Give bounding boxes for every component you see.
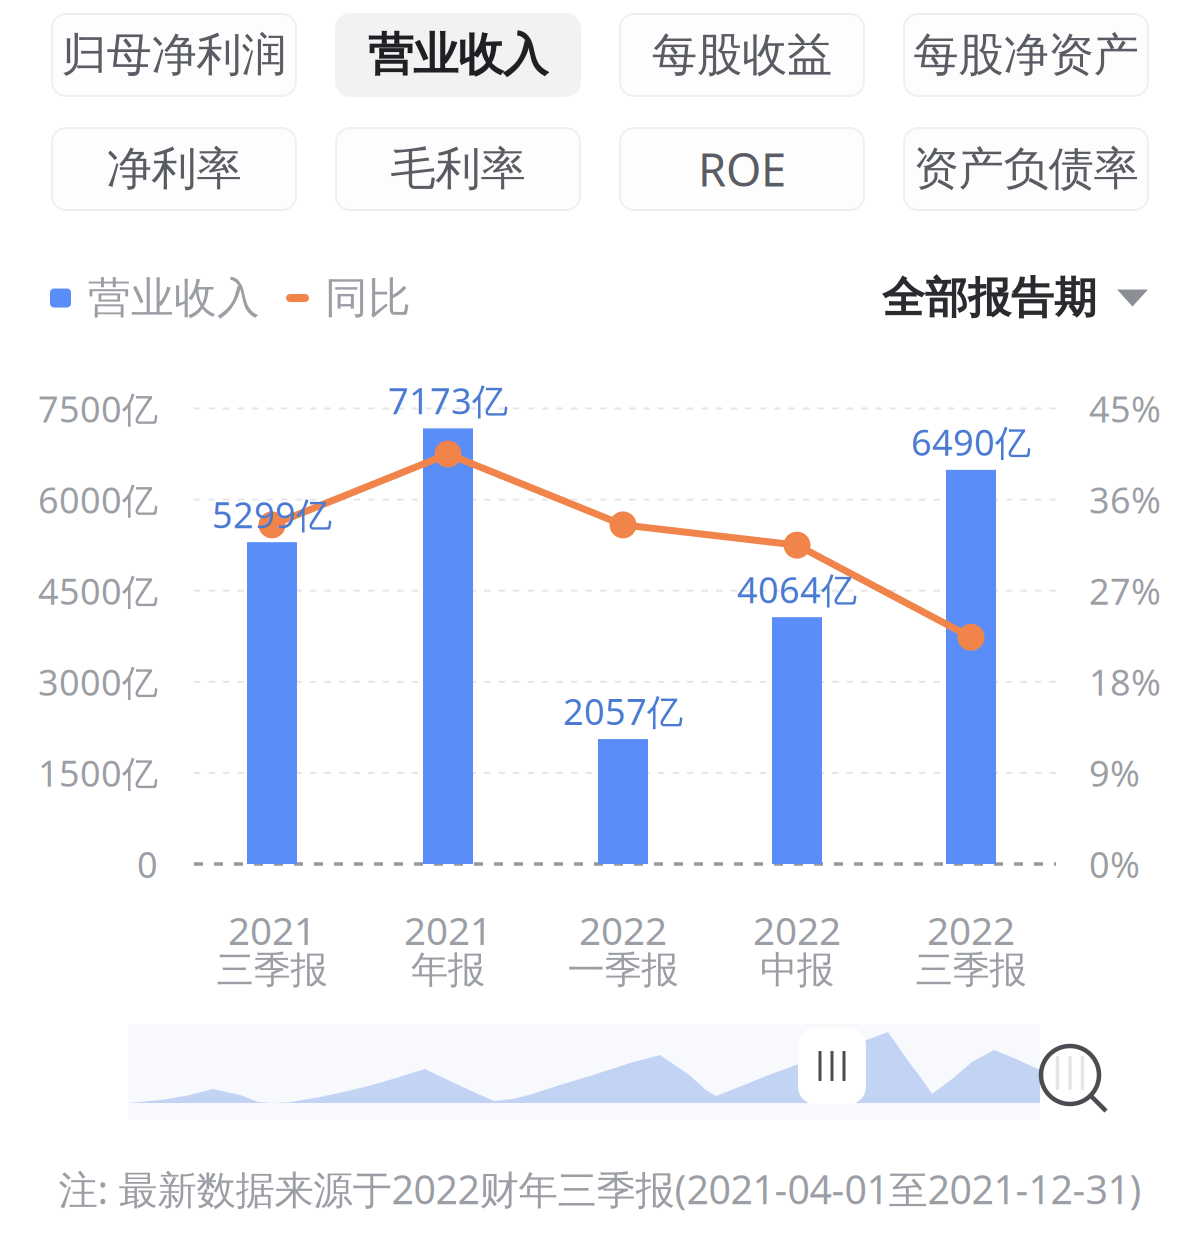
- staticText: 年报: [411, 947, 485, 993]
- staticText: 2022: [927, 904, 1015, 956]
- staticText: 2057亿: [563, 687, 683, 735]
- button[interactable]: 归母净利润: [52, 14, 296, 96]
- staticText: 营业收入: [88, 272, 260, 324]
- staticText: 2022: [753, 904, 841, 956]
- button[interactable]: Adjust range: [798, 1027, 866, 1104]
- button[interactable]: 营业收入: [336, 14, 580, 96]
- staticText: 9%: [1089, 749, 1140, 797]
- staticText: 2021: [404, 904, 492, 956]
- staticText: 0: [137, 840, 158, 888]
- staticText: ROE: [698, 139, 786, 199]
- staticText: 18%: [1089, 658, 1161, 706]
- staticText: 一季报: [567, 947, 678, 993]
- button[interactable]: ROE: [620, 128, 864, 210]
- staticText: 27%: [1089, 567, 1161, 615]
- staticText: 1500亿: [38, 749, 158, 797]
- staticText: 每股净资产: [913, 27, 1138, 83]
- staticText: 同比: [325, 272, 411, 324]
- staticText: 2022: [579, 904, 667, 956]
- button[interactable]: 净利率: [52, 128, 296, 210]
- staticText: 6000亿: [38, 476, 158, 523]
- staticText: 2021: [228, 904, 316, 956]
- staticText: 三季报: [915, 947, 1026, 993]
- staticText: 45%: [1089, 385, 1161, 432]
- staticText: 7500亿: [38, 385, 158, 432]
- staticText: 0%: [1089, 840, 1140, 888]
- staticText: 36%: [1089, 476, 1161, 523]
- button[interactable]: 每股净资产: [904, 14, 1148, 96]
- staticText: 5299亿: [212, 490, 332, 538]
- staticText: 中报: [760, 947, 834, 993]
- staticText: 净利率: [106, 141, 241, 197]
- staticText: 3000亿: [38, 658, 158, 706]
- button[interactable]: 全部报告期: [882, 272, 1148, 324]
- button[interactable]: Zoom: [1025, 1026, 1115, 1120]
- staticText: 7173亿: [388, 376, 508, 424]
- button[interactable]: 资产负债率: [904, 128, 1148, 210]
- button[interactable]: 每股收益: [620, 14, 864, 96]
- staticText: 6490亿: [911, 418, 1031, 466]
- staticText: 全部报告期: [882, 272, 1097, 324]
- staticText: 每股收益: [652, 27, 832, 83]
- staticText: 三季报: [216, 947, 327, 993]
- staticText: 4500亿: [38, 567, 158, 615]
- staticText: 营业收入: [368, 27, 548, 83]
- staticText: 毛利率: [390, 141, 525, 197]
- button[interactable]: 毛利率: [336, 128, 580, 210]
- staticText: 资产负债率: [913, 141, 1138, 197]
- staticText: 4064亿: [737, 565, 857, 613]
- staticText: 注: 最新数据来源于2022财年三季报(2021-04-01至2021-12-3…: [58, 1162, 1141, 1216]
- staticText: 归母净利润: [61, 27, 286, 83]
